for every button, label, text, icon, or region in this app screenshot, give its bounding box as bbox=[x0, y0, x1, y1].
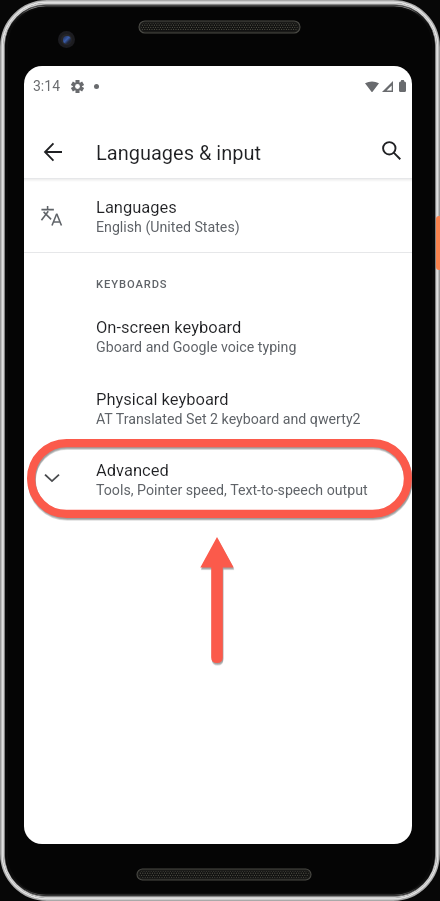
button[interactable]: Back bbox=[29, 128, 77, 176]
staticText: Languages bbox=[96, 198, 177, 217]
staticText: AT Translated Set 2 keyboard and qwerty2 bbox=[96, 411, 361, 428]
staticText: Languages & input bbox=[96, 141, 262, 164]
button[interactable]: Physical keyboard bbox=[24, 371, 412, 443]
staticText: Tools, Pointer speed, Text-to-speech out… bbox=[96, 482, 368, 499]
button[interactable]: Search bbox=[368, 127, 412, 175]
staticText: English (United States) bbox=[96, 219, 240, 236]
staticText: On-screen keyboard bbox=[96, 318, 242, 337]
button[interactable]: On-screen keyboard bbox=[24, 299, 412, 371]
staticText: Advanced bbox=[96, 461, 169, 480]
button[interactable]: Advanced bbox=[24, 442, 412, 514]
staticText: KEYBOARDS bbox=[96, 278, 168, 291]
staticText: Physical keyboard bbox=[96, 390, 229, 409]
staticText: Gboard and Google voice typing bbox=[96, 339, 297, 356]
button[interactable]: Languages bbox=[24, 179, 412, 251]
staticText: 3:14 bbox=[33, 78, 60, 94]
